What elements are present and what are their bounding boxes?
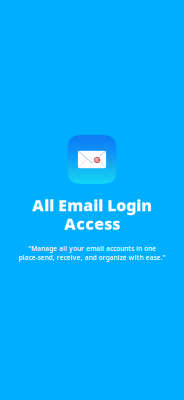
- staticText: place-send, receive, and organize with e…: [18, 253, 165, 262]
- staticText: "Manage all your email accounts in one: [28, 244, 156, 253]
- staticText: All Email Login: [32, 194, 152, 216]
- staticText: Access: [64, 213, 120, 234]
